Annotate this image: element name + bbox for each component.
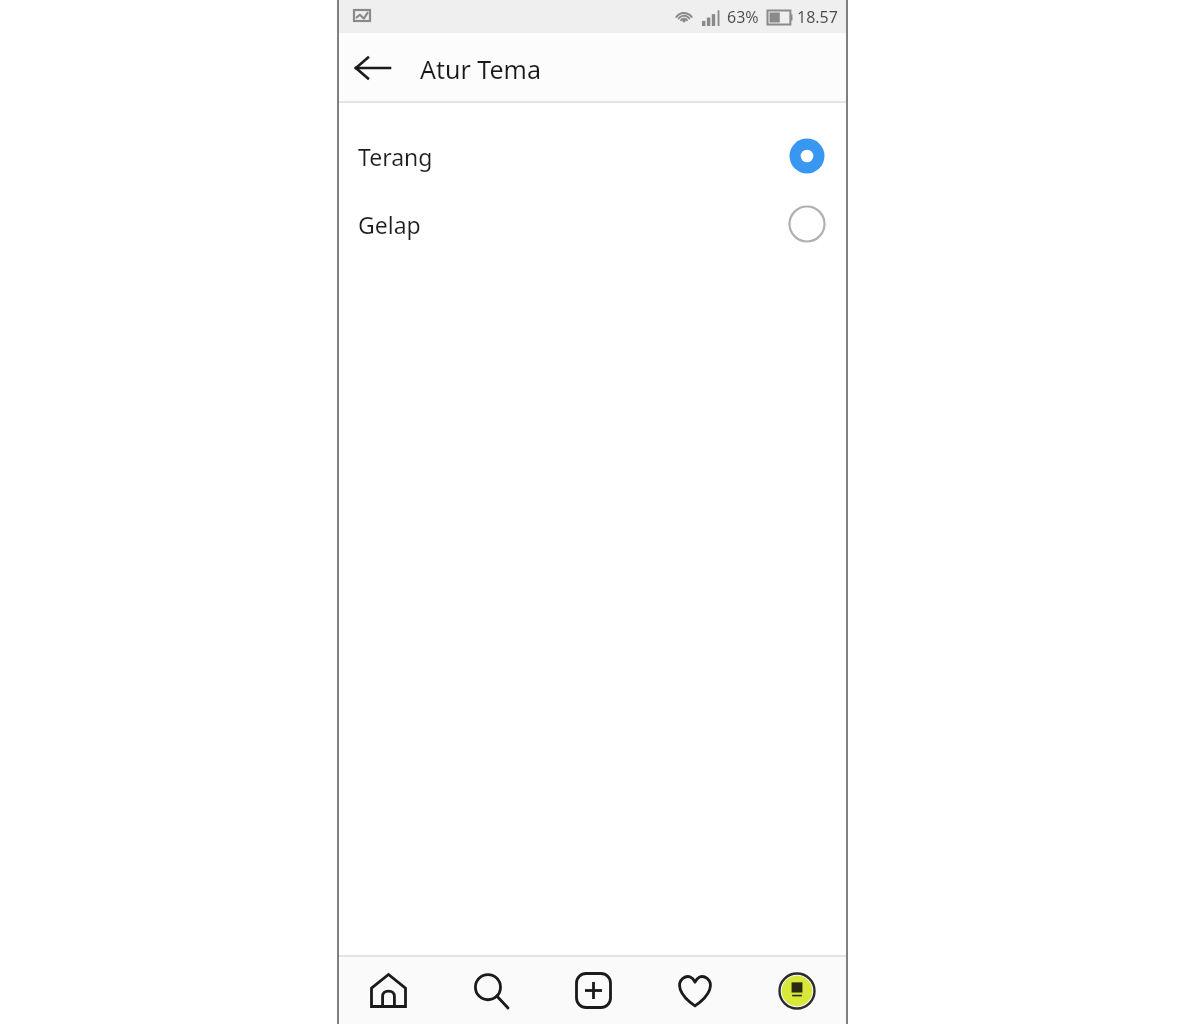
staticText: 18.57 [797, 6, 838, 28]
button[interactable]: Profile [746, 957, 848, 1024]
button[interactable]: Gelap [337, 190, 848, 258]
button[interactable]: Terang [337, 122, 848, 190]
button[interactable]: Back [345, 40, 401, 96]
button[interactable]: Add post [542, 957, 644, 1024]
staticText: Terang [358, 141, 433, 172]
button[interactable]: Home [337, 957, 440, 1024]
button[interactable]: Search [440, 957, 542, 1024]
staticText: Gelap [358, 209, 421, 240]
staticText: Atur Tema [420, 52, 541, 86]
staticText: 63% [727, 6, 759, 28]
button[interactable]: Activity [644, 957, 746, 1024]
